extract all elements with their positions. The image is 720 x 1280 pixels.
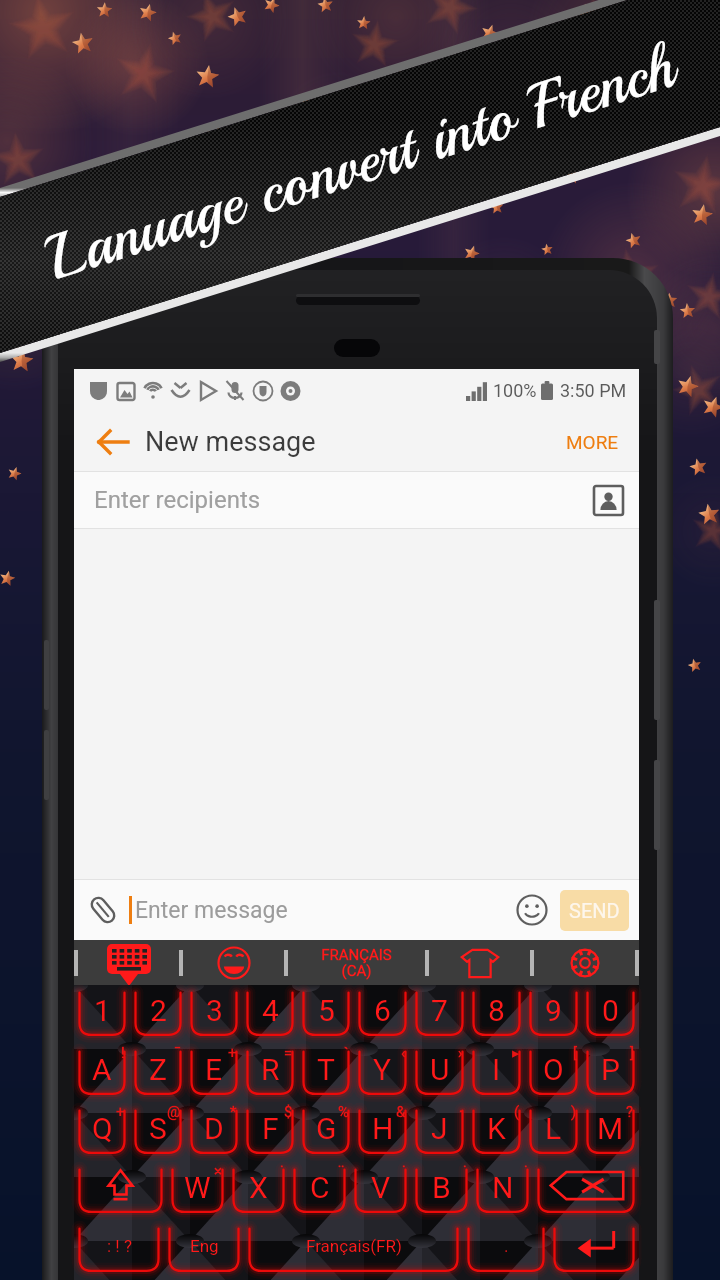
button[interactable]: E [190,1044,238,1103]
button[interactable]: O [529,1044,578,1103]
staticText: @ [167,1103,181,1121]
staticText: Z [149,1052,167,1087]
staticText: ˙ [280,1162,284,1180]
staticText: 1 [94,993,111,1028]
button[interactable]: F [246,1103,294,1162]
button[interactable] [78,1162,163,1221]
button[interactable] [553,1221,635,1280]
button[interactable]: V [354,1162,407,1221]
staticText: 100% [493,380,537,401]
button[interactable]: : ! ? [78,1221,160,1280]
staticText: ˙ [524,1162,528,1180]
staticText: › [458,1044,463,1062]
button[interactable]: R [246,1044,294,1103]
button[interactable]: 4 [246,985,294,1044]
staticText: M [597,1111,624,1146]
staticText: ) [571,1103,577,1121]
button[interactable]: S [134,1103,182,1162]
button[interactable]: Theme [429,940,530,985]
staticText: G [316,1111,337,1146]
button[interactable]: J [415,1103,464,1162]
staticText: & [396,1103,406,1121]
staticText: K [487,1111,506,1146]
button[interactable]: Keyboard [78,940,179,985]
staticText: Français(FR) [306,1236,402,1256]
staticText: Eng [190,1236,219,1256]
button[interactable]: 8 [472,985,521,1044]
button[interactable]: A [78,1044,126,1103]
button[interactable]: T [302,1044,350,1103]
button[interactable]: B [415,1162,468,1221]
staticText: 3 [206,993,223,1028]
staticText: ? [626,1103,634,1121]
staticText: New message [145,426,316,458]
button[interactable]: Emoji [183,940,284,985]
staticText: · [459,1103,463,1121]
staticText: B [432,1170,451,1205]
button[interactable]: W [171,1162,224,1221]
button[interactable]: M [586,1103,635,1162]
button[interactable]: 0 [586,985,635,1044]
other: Attach file [88,895,118,925]
button[interactable]: 7 [415,985,464,1044]
button[interactable]: D [190,1103,238,1162]
staticText: A [92,1052,112,1087]
button[interactable]: Settings [534,940,635,985]
button[interactable]: Back [94,423,132,461]
button[interactable]: 6 [358,985,407,1044]
button[interactable]: U [415,1044,464,1103]
staticText: J [431,1111,448,1146]
staticText: + [228,1044,237,1062]
button[interactable]: 5 [302,985,350,1044]
button[interactable]: 9 [529,985,578,1044]
button[interactable]: P [586,1044,635,1103]
staticText: × [214,1162,223,1180]
button[interactable]: N [476,1162,529,1221]
staticText: ( [514,1103,520,1121]
staticText: ‹ [401,1044,406,1062]
staticText: H [372,1111,394,1146]
staticText: 7 [431,993,448,1028]
button[interactable]: . [467,1221,545,1280]
button[interactable]: C [293,1162,346,1221]
button[interactable]: I [472,1044,521,1103]
button[interactable]: 1 [78,985,126,1044]
staticText: X [249,1170,268,1205]
staticText: 0 [602,993,619,1028]
button[interactable]: L [529,1103,578,1162]
button[interactable]: MORE [564,425,621,459]
staticText: W [184,1170,211,1205]
button[interactable]: 3 [190,985,238,1044]
button[interactable]: FRANÇAIS (CA) [288,940,425,985]
button[interactable]: Q [78,1103,126,1162]
other: Emoji [516,894,548,926]
button[interactable]: 2 [134,985,182,1044]
staticText: ▸ [512,1044,520,1061]
button[interactable]: Y [358,1044,407,1103]
staticText: 8 [488,993,505,1028]
button[interactable]: H [358,1103,407,1162]
button[interactable]: Z [134,1044,182,1103]
button[interactable]: Enter recipients [74,472,639,528]
button[interactable]: X [232,1162,285,1221]
staticText: : ! ? [107,1236,132,1256]
staticText: + [116,1103,125,1121]
staticText: 9 [545,993,562,1028]
staticText: F [262,1111,279,1146]
staticText: C [310,1170,330,1205]
button[interactable]: K [472,1103,521,1162]
staticText: ¯ [174,1044,181,1062]
button[interactable]: Français(FR) [248,1221,459,1280]
button[interactable]: Eng [168,1221,240,1280]
staticText: R [261,1052,280,1087]
staticText: $ [284,1103,293,1121]
staticText: 5 [318,993,335,1028]
staticText: ˙ [402,1162,406,1180]
button[interactable]: G [302,1103,350,1162]
staticText: L [545,1111,562,1146]
staticText: 4 [262,993,279,1028]
staticText: U [430,1052,450,1087]
button[interactable] [537,1162,635,1221]
staticText: FRANÇAIS (CA) [321,946,392,979]
button[interactable]: SEND [560,890,629,931]
